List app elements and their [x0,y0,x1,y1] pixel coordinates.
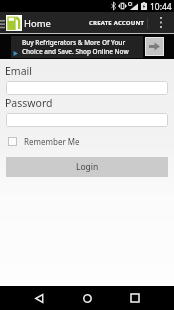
staticText: Choice and Save. Shop Online Now [22,47,129,56]
button[interactable]: Next ad [146,38,163,55]
staticText: CREATE ACCOUNT [89,19,145,27]
button[interactable] [6,81,168,95]
button[interactable]: More options [152,12,170,33]
staticText: Buy Refrigerators & More Of Your [22,38,126,47]
button[interactable]: CREATE ACCOUNT [86,14,148,32]
staticText: Remember Me [24,136,80,147]
staticText: Password [5,96,53,110]
button[interactable]: Recent apps [123,286,147,310]
staticText: Home [24,17,51,30]
button[interactable]: Home [75,286,99,310]
staticText: Login [76,161,99,173]
button[interactable]: Login [6,157,168,177]
staticText: 10:44 [150,1,172,13]
button[interactable]: Back [27,286,51,310]
button[interactable]: Remember Me [8,136,80,147]
staticText: Email [5,64,32,78]
button[interactable]: Navigation menu [0,12,6,33]
button[interactable] [6,113,168,127]
button[interactable]: Buy Refrigerators & More Of Your [0,34,174,59]
